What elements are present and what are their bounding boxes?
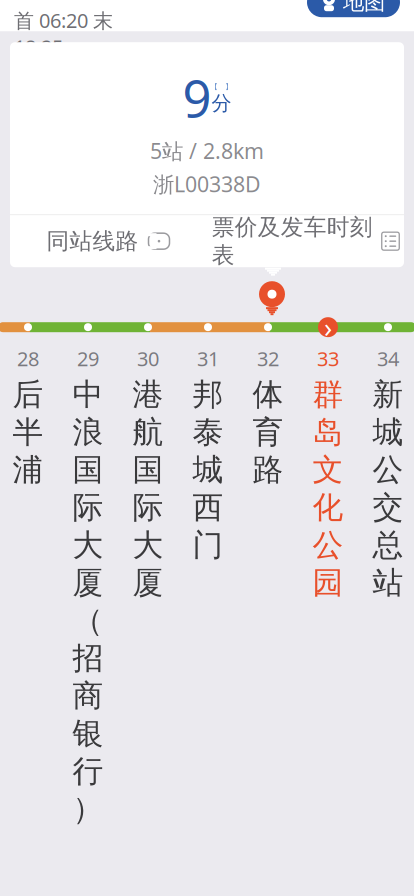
staticText: 分 xyxy=(211,91,231,116)
button[interactable]: 地图 xyxy=(307,0,400,17)
staticText: 中 浪 国 际 大 厦 （ 招 商 银 行 ） xyxy=(72,376,103,828)
staticText: 5站 / 2.8km xyxy=(150,136,264,165)
staticText: 群 岛 文 化 公 园 xyxy=(312,376,343,602)
button[interactable]: 30 xyxy=(118,345,178,832)
staticText: 后 半 浦 xyxy=(12,376,43,489)
staticText: 32 xyxy=(257,345,279,372)
staticText: 港 航 国 际 大 厦 xyxy=(132,376,163,602)
staticText: › xyxy=(324,309,332,345)
button[interactable]: 34 xyxy=(358,345,414,832)
button[interactable]: 32 xyxy=(238,345,298,832)
button[interactable]: 33 xyxy=(298,345,358,832)
staticText: 地图 xyxy=(343,0,385,15)
button[interactable]: 29 xyxy=(58,345,118,832)
staticText: 浙L00338D xyxy=(153,170,261,198)
staticText: 34 xyxy=(377,345,399,372)
staticText: 31 xyxy=(197,345,219,372)
staticText: 9 xyxy=(182,64,211,131)
staticText: 28 xyxy=(17,345,39,372)
button[interactable]: 同站线路 xyxy=(10,215,207,267)
staticText: 同站线路 xyxy=(46,227,138,255)
staticText: 邦 泰 城 西 门 xyxy=(192,376,223,564)
button[interactable]: 28 xyxy=(0,345,58,832)
staticText: 体 育 路 xyxy=(252,376,283,489)
staticText: 首 06:20 末 18:25 xyxy=(14,7,113,60)
button[interactable]: 31 xyxy=(178,345,238,832)
button[interactable]: 票价及发车时刻表 xyxy=(207,215,404,267)
staticText: 30 xyxy=(137,345,159,372)
staticText: 29 xyxy=(77,345,99,372)
staticText: 新 城 公 交 总 站 xyxy=(372,376,403,602)
staticText: 33 xyxy=(317,345,339,372)
staticText: 票价及发车时刻表 xyxy=(212,213,373,269)
